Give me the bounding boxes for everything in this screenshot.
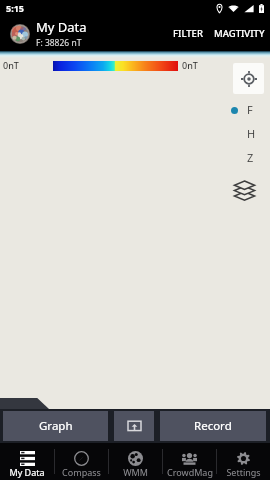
staticText: WMM xyxy=(123,466,148,478)
button[interactable]: Z xyxy=(229,150,259,165)
staticText: Z xyxy=(247,150,254,165)
button[interactable]: Graph xyxy=(3,411,108,441)
staticText: My Data xyxy=(36,18,87,36)
button[interactable]: MAGTIVITY xyxy=(209,18,270,49)
button[interactable]: My location xyxy=(233,63,264,94)
staticText: 0nT xyxy=(3,59,19,71)
staticText: Record xyxy=(194,418,232,434)
button[interactable]: WMM xyxy=(109,443,162,480)
staticText: CrowdMag xyxy=(167,466,213,478)
staticText: Compass xyxy=(62,466,101,478)
staticText: F: 38826 nT xyxy=(36,37,82,49)
button[interactable]: FILTER xyxy=(168,18,208,49)
staticText: 0nT xyxy=(182,59,198,71)
button[interactable]: F xyxy=(229,102,259,117)
staticText: F xyxy=(247,102,253,117)
staticText: Graph xyxy=(39,418,73,434)
button[interactable]: Map layers xyxy=(232,178,256,202)
button[interactable]: My Data xyxy=(0,443,54,480)
staticText: FILTER xyxy=(173,27,203,40)
staticText: My Data xyxy=(9,466,45,478)
staticText: Settings xyxy=(226,466,261,478)
staticText: 5:15 xyxy=(6,2,24,14)
staticText: H xyxy=(247,126,256,141)
button[interactable]: Compass xyxy=(55,443,108,480)
button[interactable]: Settings xyxy=(217,443,270,480)
button[interactable]: Record xyxy=(160,411,266,441)
staticText: MAGTIVITY xyxy=(214,27,265,40)
button[interactable]: H xyxy=(229,126,259,141)
button[interactable]: Save snapshot xyxy=(114,411,154,441)
button[interactable]: CrowdMag xyxy=(163,443,216,480)
